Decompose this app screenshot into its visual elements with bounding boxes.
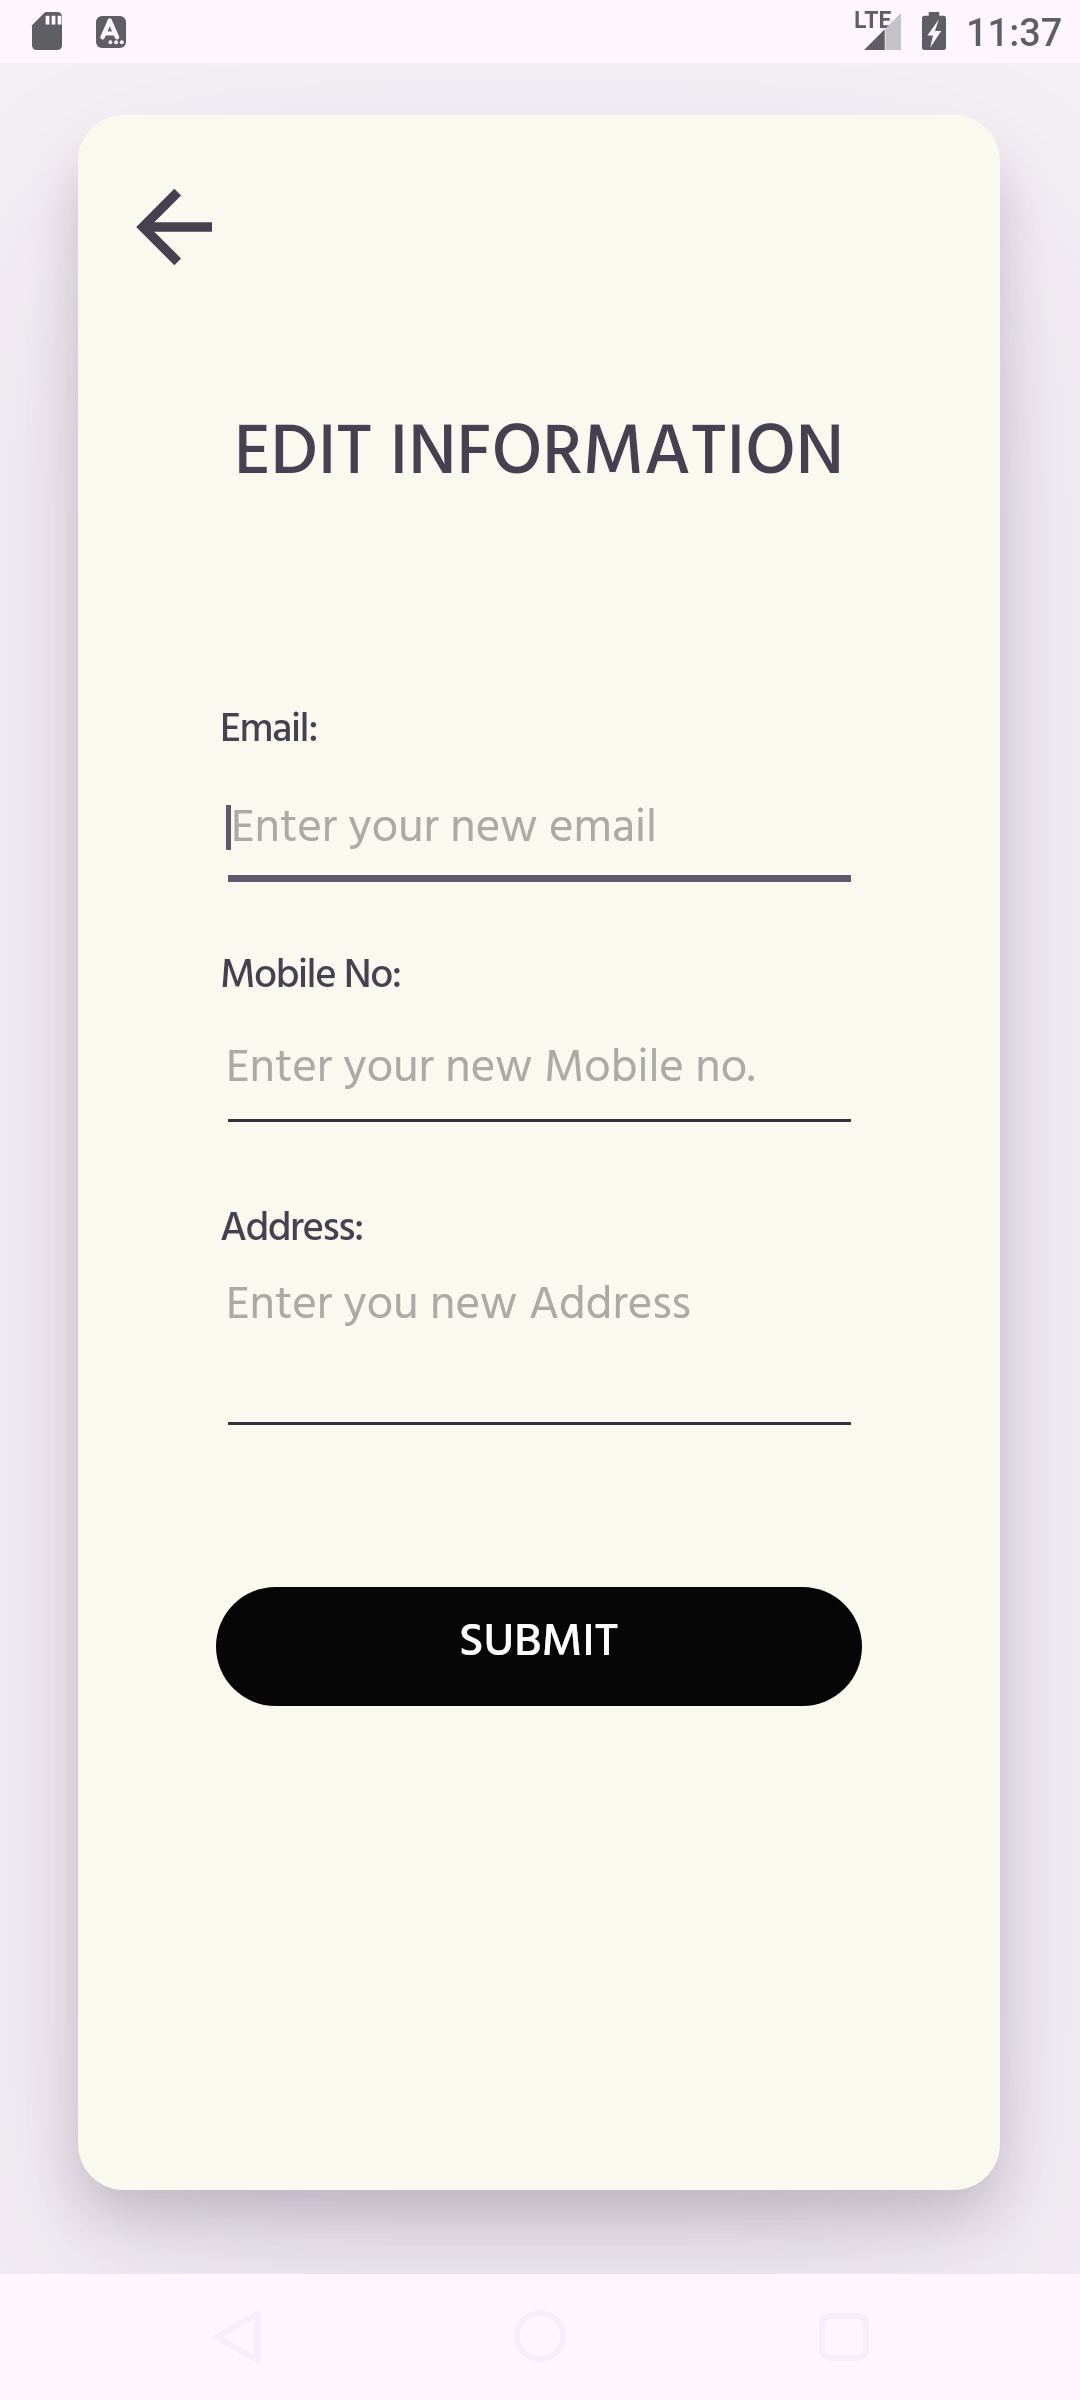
button[interactable]: Enter your new Mobile no.	[226, 1031, 851, 1101]
button[interactable]: Enter you new Address	[226, 1268, 851, 1338]
staticText: EDIT INFORMATION	[78, 398, 1000, 512]
staticText: Mobile No:	[220, 944, 401, 1010]
staticText: Enter your new Mobile no.	[226, 1031, 755, 1101]
staticText: Address:	[220, 1197, 363, 1263]
staticText: SUBMIT	[459, 1605, 619, 1680]
staticText: Enter you new Address	[226, 1268, 691, 1338]
button[interactable]: Enter your new email	[226, 791, 851, 861]
staticText: Email:	[220, 698, 317, 764]
staticText: Enter your new email	[231, 791, 657, 861]
button[interactable]: Back	[102, 154, 247, 299]
button[interactable]: SUBMIT	[216, 1587, 862, 1706]
staticText: LTE	[854, 7, 892, 34]
staticText: 11:37	[966, 11, 1063, 56]
